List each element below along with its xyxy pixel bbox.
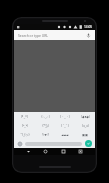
button[interactable]: Recent apps — [60, 148, 67, 155]
staticText: ▣▣ — [82, 133, 88, 137]
button[interactable]: Menu — [77, 148, 84, 155]
button[interactable]: (ಠ_ಠ) — [75, 121, 95, 130]
button[interactable]: (◕ᴥ◕) — [75, 112, 95, 121]
button[interactable]: Switch keyboard — [17, 141, 23, 147]
staticText: (ಠ_ಠ) — [82, 124, 89, 128]
button[interactable]: Send — [85, 140, 92, 147]
staticText: ʕ•ᴥ•ʔ — [42, 133, 49, 137]
button[interactable]: ʕ•ᴥ•ʔ — [35, 130, 55, 139]
button[interactable]: Home — [42, 148, 49, 155]
button[interactable]: ▰▰▰ — [55, 130, 75, 139]
staticText: ▰▰▰ — [61, 133, 69, 137]
button[interactable]: ( ͡° ͜ʖ) — [35, 121, 55, 130]
button[interactable]: (・_・) — [55, 112, 75, 121]
button[interactable]: Space — [25, 142, 82, 146]
staticText: Search or type URL — [18, 33, 49, 38]
button[interactable]: (•̀_•́) — [14, 121, 35, 130]
staticText: (╹_╹) — [21, 115, 28, 119]
staticText: 14:05 — [84, 25, 93, 29]
button[interactable]: (╹_╹) — [14, 112, 35, 121]
staticText: ( ͡° ͜ʖ) — [42, 124, 49, 128]
staticText: ( ˘_˘ ) — [61, 124, 69, 128]
staticText: (・_・) — [60, 115, 70, 119]
button[interactable]: Search or type URL — [14, 30, 95, 40]
button[interactable]: Back — [25, 148, 32, 155]
button[interactable]: ( ˘_˘ ) — [55, 121, 75, 130]
staticText: (•̀_•́) — [22, 124, 28, 128]
button[interactable]: Voice search — [84, 31, 92, 39]
staticText: (◕ᴥ◕) — [81, 115, 90, 119]
staticText: (◦◡◦) — [41, 115, 50, 119]
button[interactable]: ¯\_(ツ) — [14, 130, 35, 139]
staticText: ¯\_(ツ) — [20, 133, 30, 137]
button[interactable]: (◦◡◦) — [35, 112, 55, 121]
button[interactable]: ▣▣ — [75, 130, 95, 139]
